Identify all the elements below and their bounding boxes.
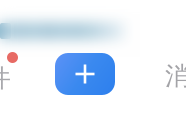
- button[interactable]: 消: [165, 64, 186, 88]
- staticText: 消: [165, 60, 186, 91]
- staticText: 件: [0, 62, 10, 93]
- button[interactable]: Contacts: [0, 47, 26, 99]
- button[interactable]: New message: [55, 53, 115, 95]
